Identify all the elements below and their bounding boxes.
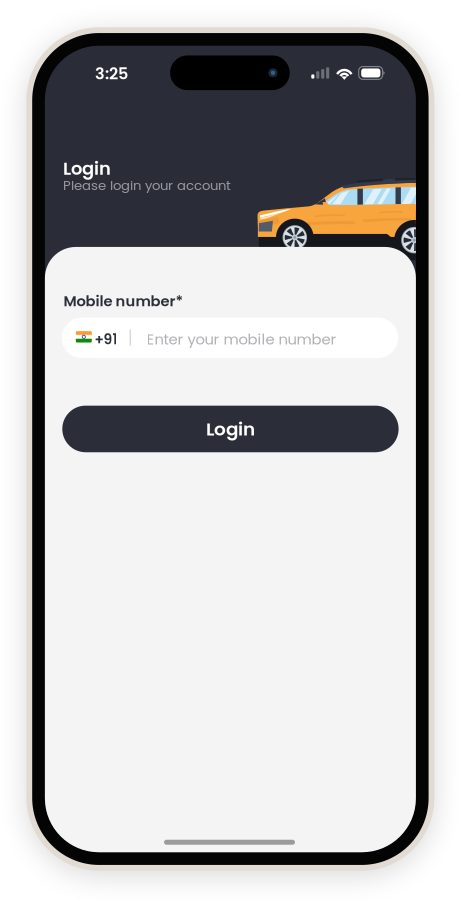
staticText: Mobile number* — [63, 291, 183, 311]
staticText: 3:25 — [95, 62, 128, 85]
button[interactable]: Login — [62, 406, 399, 452]
staticText: Enter your mobile number — [147, 329, 337, 349]
staticText: +91 — [94, 330, 117, 349]
staticText: Please login your account — [63, 176, 231, 195]
staticText: Login — [206, 416, 255, 442]
staticText: Login — [63, 156, 111, 181]
